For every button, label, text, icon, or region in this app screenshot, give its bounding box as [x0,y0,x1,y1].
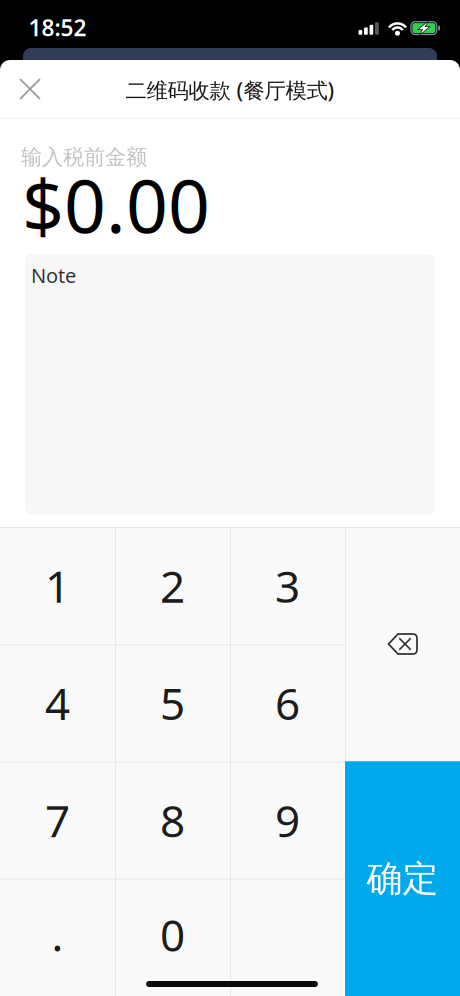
button[interactable]: 确定 [345,761,460,996]
staticText: 3 [275,556,300,615]
button[interactable]: 3 [230,527,345,644]
button[interactable]: Note [25,254,435,515]
button[interactable]: 7 [0,761,115,879]
button[interactable]: 5 [115,644,230,761]
button[interactable]: 6 [230,644,345,761]
button[interactable]: 9 [230,761,345,879]
staticText: 确定 [366,857,438,901]
staticText: 6 [275,674,300,732]
staticText: 2 [160,556,185,615]
staticText: 1 [45,556,70,615]
button[interactable]: 2 [115,527,230,644]
button[interactable]: Close [8,67,52,111]
staticText: 4 [45,674,70,732]
staticText: 0 [160,905,185,964]
staticText: 7 [45,791,70,849]
button[interactable]: 0 [115,876,230,993]
button[interactable]: . [0,876,115,993]
staticText: Note [31,262,76,289]
button[interactable]: Delete [345,527,460,761]
button[interactable]: 4 [0,644,115,761]
staticText: $0.00 [22,156,210,253]
staticText: 5 [160,674,185,732]
staticText: . [51,905,63,964]
staticText: 8 [160,791,185,849]
button[interactable]: 1 [0,527,115,644]
staticText: 输入税前金额 [21,144,147,170]
staticText: 18:52 [28,12,86,42]
button[interactable]: 8 [115,761,230,879]
staticText: 二维码收款 (餐厅模式) [125,76,334,104]
staticText: 9 [275,791,300,849]
